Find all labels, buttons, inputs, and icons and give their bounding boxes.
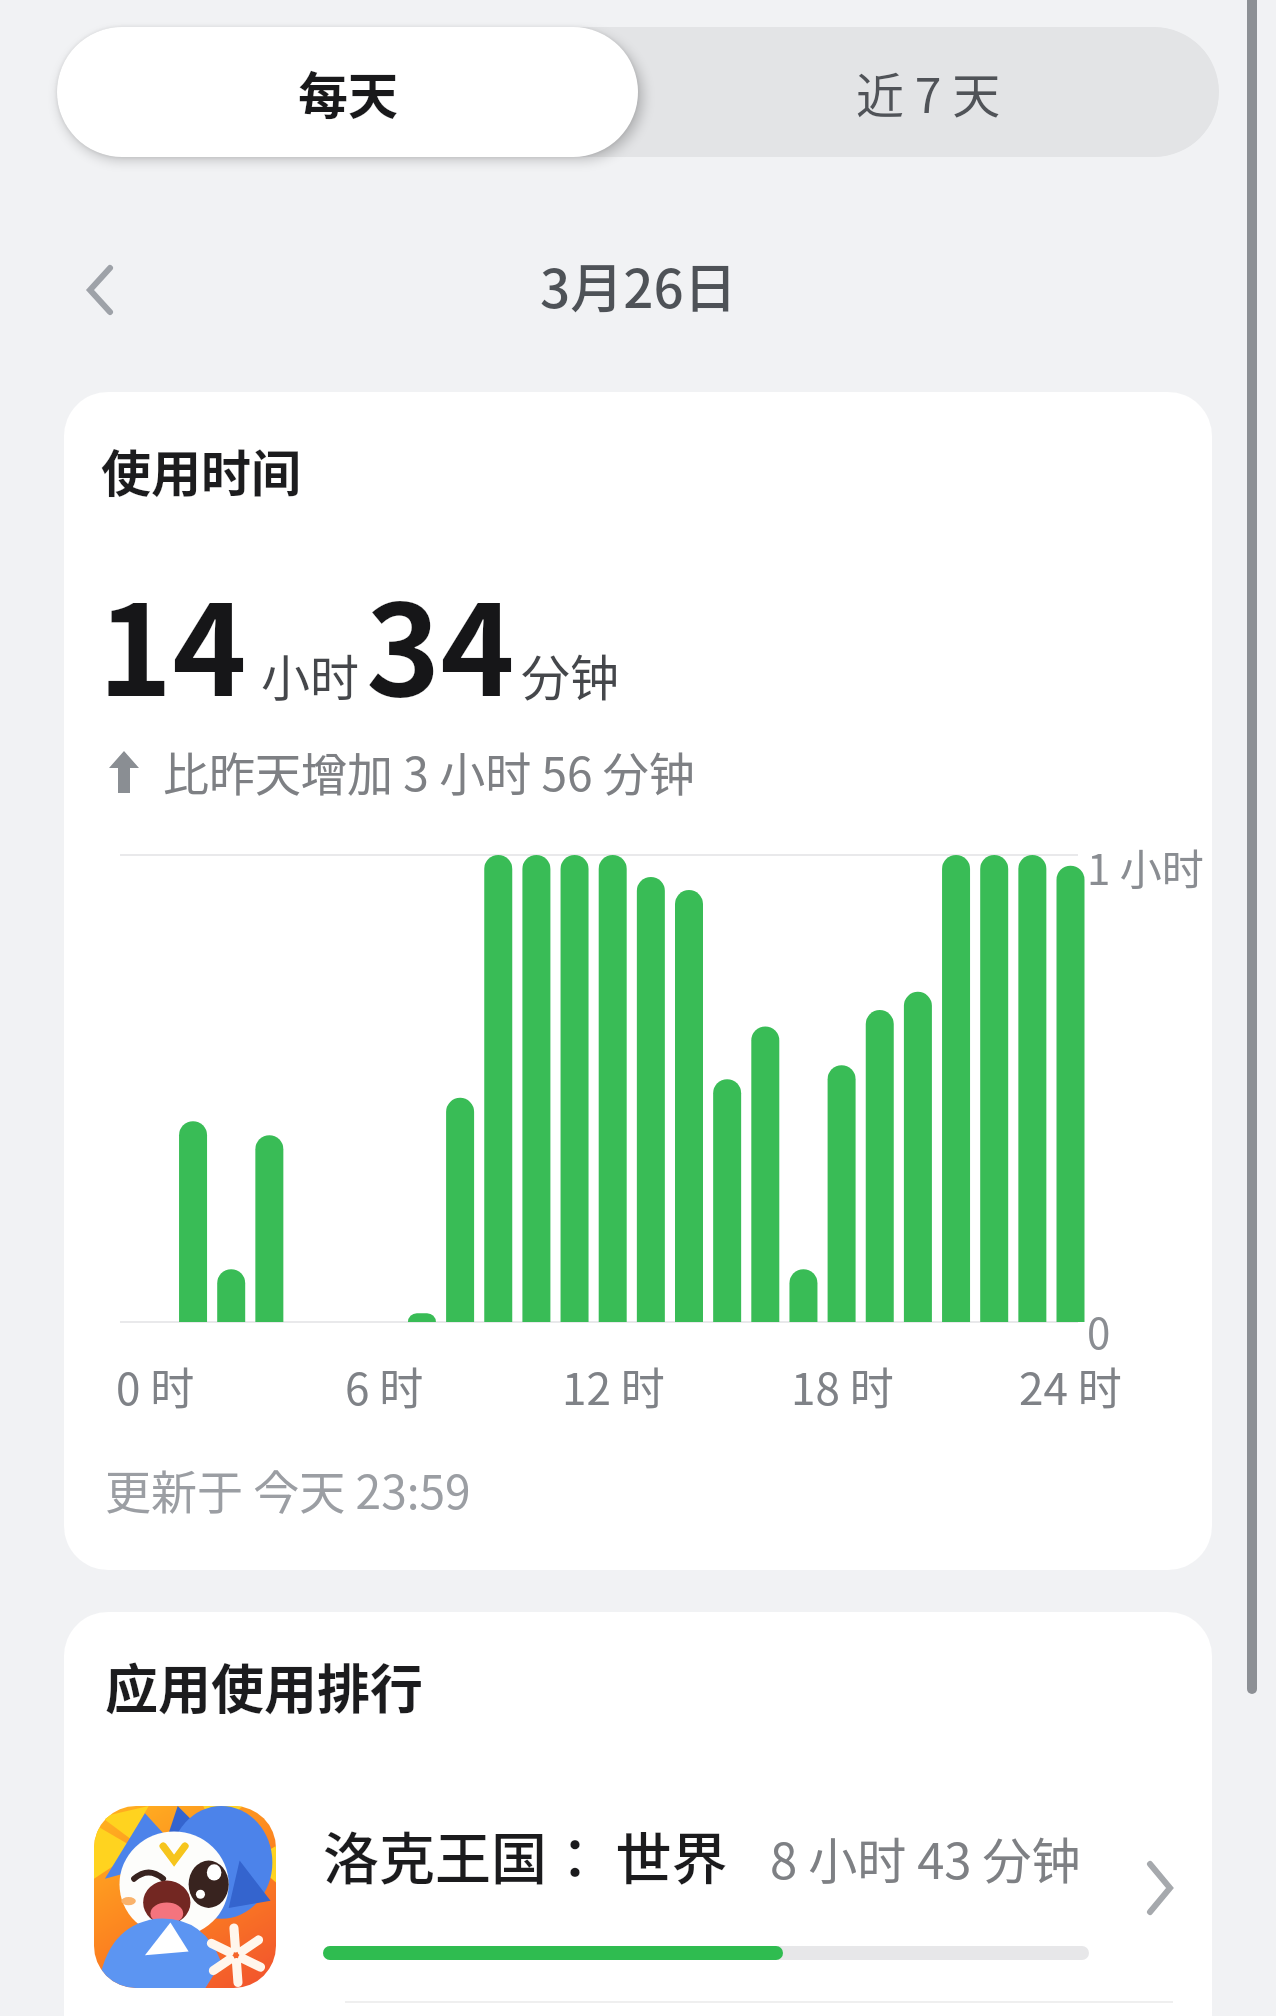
- staticText: 1 小时: [1087, 836, 1204, 897]
- staticText: 34: [366, 550, 515, 732]
- staticText: 14: [98, 550, 247, 732]
- staticText: 0 时: [116, 1354, 195, 1418]
- staticText: 每天: [298, 56, 398, 128]
- staticText: 18 时: [791, 1354, 894, 1418]
- staticText: 近 7 天: [856, 57, 1001, 127]
- staticText: 洛克王国： 世界: [323, 1814, 728, 1895]
- staticText: 分钟: [521, 639, 620, 710]
- staticText: 8 小时 43 分钟: [770, 1822, 1081, 1893]
- staticText: 小时: [261, 639, 360, 710]
- button[interactable]: 近 7 天: [638, 27, 1219, 157]
- staticText: 更新于 今天 23:59: [105, 1456, 471, 1523]
- staticText: 比昨天增加 3 小时 56 分钟: [163, 738, 695, 805]
- staticText: 24 时: [1019, 1354, 1122, 1418]
- staticText: 3月26日: [540, 247, 737, 317]
- staticText: 使用时间: [101, 434, 301, 506]
- staticText: 12 时: [562, 1354, 665, 1418]
- staticText: 6 时: [345, 1354, 424, 1418]
- button[interactable]: [84, 266, 118, 314]
- button[interactable]: 洛克王国： 世界: [64, 1782, 1212, 2016]
- staticText: 应用使用排行: [105, 1648, 423, 1725]
- button[interactable]: 每天: [57, 27, 638, 157]
- staticText: 0: [1087, 1300, 1111, 1361]
